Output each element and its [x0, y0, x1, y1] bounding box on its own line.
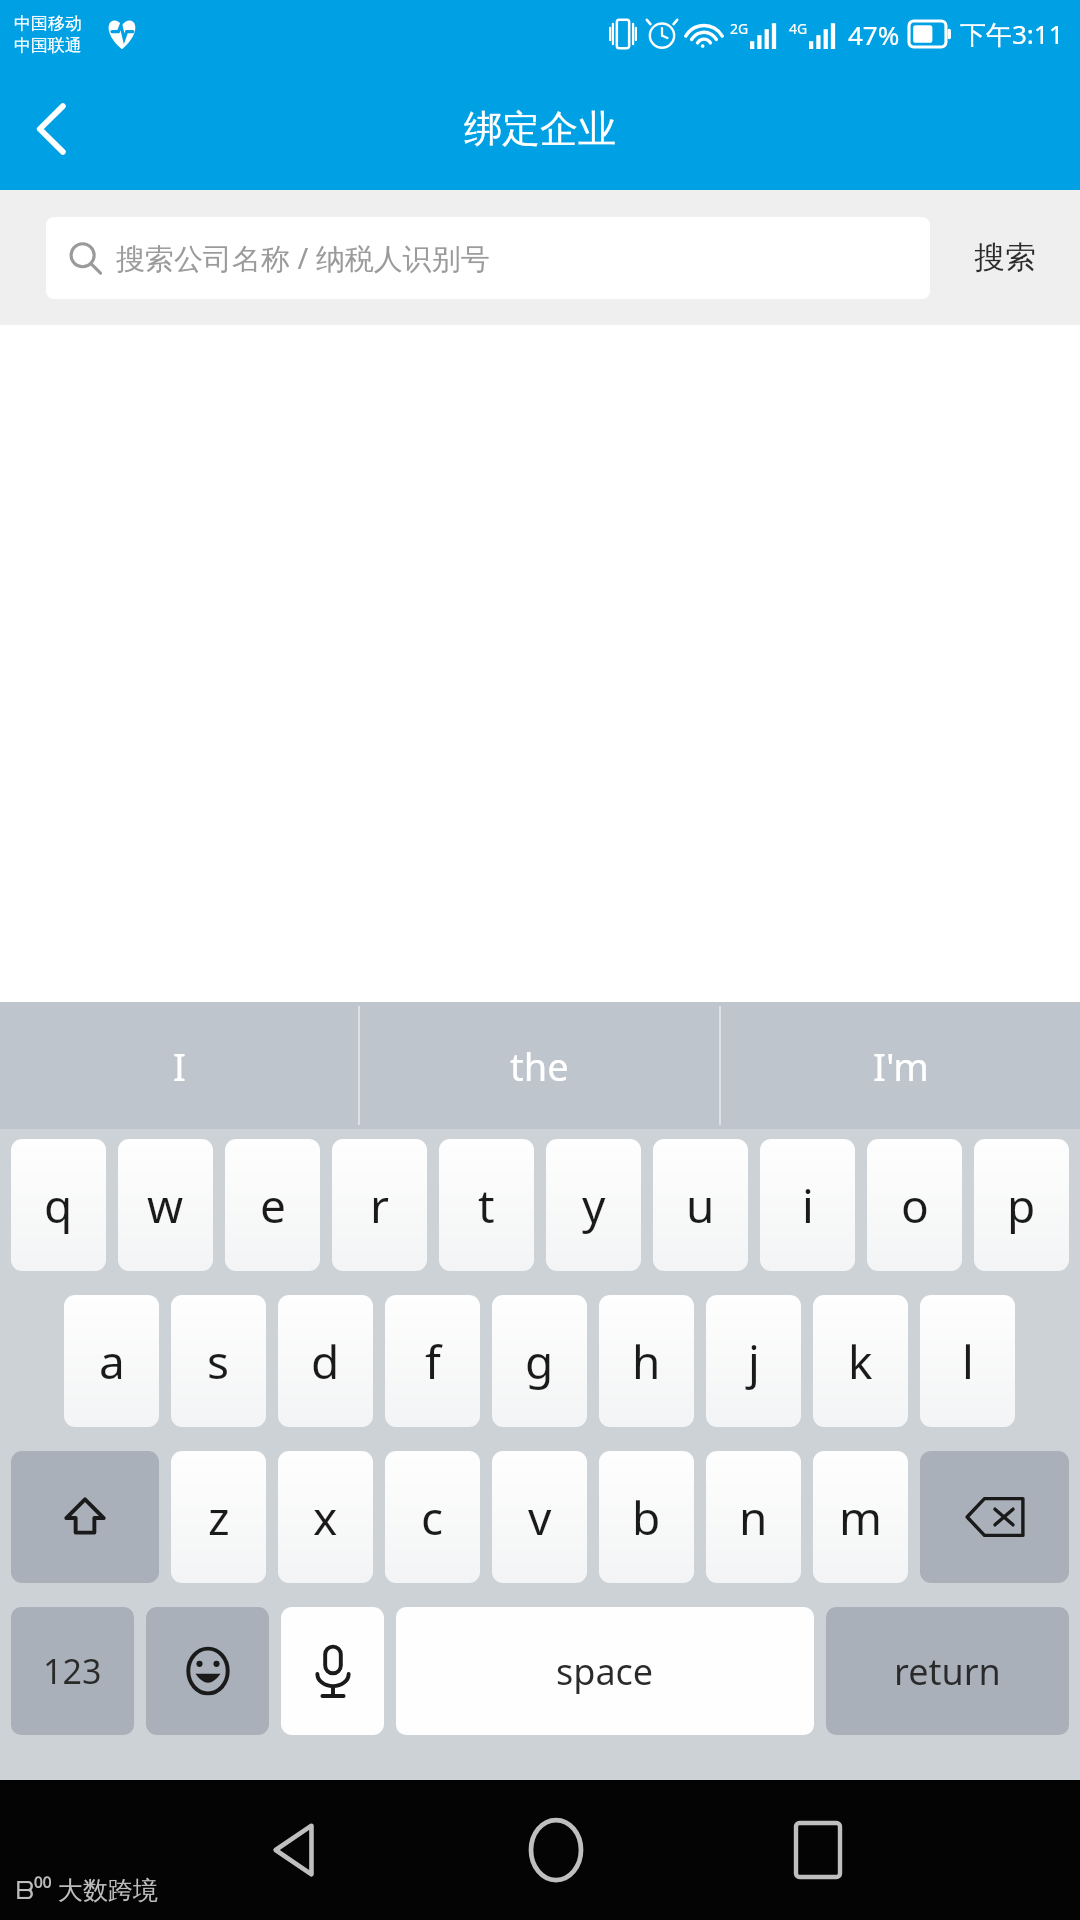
staticText: h: [632, 1330, 661, 1393]
staticText: y: [582, 1174, 606, 1237]
button[interactable]: h: [599, 1295, 694, 1427]
staticText: n: [739, 1486, 768, 1549]
button[interactable]: s: [171, 1295, 266, 1427]
staticText: 中国移动: [14, 13, 82, 34]
button[interactable]: Shift: [11, 1451, 159, 1583]
staticText: k: [848, 1330, 873, 1393]
button[interactable]: m: [813, 1451, 908, 1583]
button[interactable]: d: [278, 1295, 373, 1427]
button[interactable]: t: [439, 1139, 534, 1271]
staticText: c: [421, 1486, 444, 1549]
button[interactable]: w: [118, 1139, 213, 1271]
button[interactable]: q: [11, 1139, 106, 1271]
staticText: 123: [43, 1648, 102, 1694]
staticText: b: [632, 1486, 661, 1549]
staticText: space: [556, 1647, 654, 1696]
staticText: 2G: [730, 19, 749, 38]
button[interactable]: g: [492, 1295, 587, 1427]
button[interactable]: e: [225, 1139, 320, 1271]
staticText: f: [425, 1330, 441, 1393]
button[interactable]: Voice input: [281, 1607, 384, 1735]
button[interactable]: a: [64, 1295, 159, 1427]
staticText: i: [802, 1174, 814, 1237]
staticText: p: [1007, 1174, 1036, 1237]
staticText: I'm: [873, 1040, 929, 1092]
button[interactable]: Backspace: [920, 1451, 1069, 1583]
staticText: 搜索公司名称 / 纳税人识别号: [116, 238, 490, 278]
staticText: l: [962, 1330, 974, 1393]
button[interactable]: i: [760, 1139, 855, 1271]
button[interactable]: Back: [0, 77, 104, 181]
button[interactable]: x: [278, 1451, 373, 1583]
button[interactable]: Home: [425, 1780, 687, 1920]
button[interactable]: u: [653, 1139, 748, 1271]
button[interactable]: c: [385, 1451, 480, 1583]
button[interactable]: p: [974, 1139, 1069, 1271]
staticText: j: [748, 1330, 760, 1393]
staticText: 中国联通: [14, 35, 82, 56]
staticText: 绑定企业: [464, 105, 616, 153]
staticText: u: [686, 1174, 715, 1237]
staticText: 搜索: [974, 238, 1036, 277]
staticText: ᗷ⁰⁰ 大数跨境: [16, 1872, 159, 1906]
button[interactable]: j: [706, 1295, 801, 1427]
staticText: 47%: [848, 17, 900, 52]
button[interactable]: 搜索: [930, 190, 1080, 325]
staticText: q: [44, 1174, 73, 1237]
staticText: x: [313, 1486, 338, 1549]
button[interactable]: I: [0, 1002, 358, 1129]
button[interactable]: the: [360, 1002, 719, 1129]
staticText: o: [901, 1174, 929, 1237]
staticText: s: [207, 1330, 230, 1393]
staticText: 4G: [789, 19, 808, 38]
button[interactable]: Back: [163, 1780, 425, 1920]
staticText: e: [260, 1174, 286, 1237]
staticText: a: [99, 1330, 125, 1393]
button[interactable]: space: [396, 1607, 814, 1735]
staticText: r: [370, 1174, 389, 1237]
button[interactable]: f: [385, 1295, 480, 1427]
button[interactable]: o: [867, 1139, 962, 1271]
button[interactable]: v: [492, 1451, 587, 1583]
staticText: the: [510, 1040, 569, 1092]
staticText: d: [311, 1330, 340, 1393]
button[interactable]: l: [920, 1295, 1015, 1427]
button[interactable]: I'm: [721, 1002, 1080, 1129]
staticText: m: [839, 1486, 883, 1549]
button[interactable]: return: [826, 1607, 1069, 1735]
button[interactable]: b: [599, 1451, 694, 1583]
button[interactable]: y: [546, 1139, 641, 1271]
staticText: 下午3:11: [960, 16, 1064, 52]
button[interactable]: n: [706, 1451, 801, 1583]
button[interactable]: 搜索公司名称 / 纳税人识别号: [46, 217, 930, 299]
button[interactable]: z: [171, 1451, 266, 1583]
button[interactable]: Emoji: [146, 1607, 269, 1735]
staticText: v: [528, 1486, 552, 1549]
staticText: z: [208, 1486, 230, 1549]
button[interactable]: 123: [11, 1607, 134, 1735]
button[interactable]: Recent apps: [687, 1780, 949, 1920]
staticText: return: [894, 1647, 1001, 1696]
staticText: g: [525, 1330, 554, 1393]
staticText: t: [478, 1174, 495, 1237]
staticText: w: [147, 1174, 184, 1237]
button[interactable]: r: [332, 1139, 427, 1271]
button[interactable]: k: [813, 1295, 908, 1427]
staticText: I: [173, 1040, 186, 1092]
